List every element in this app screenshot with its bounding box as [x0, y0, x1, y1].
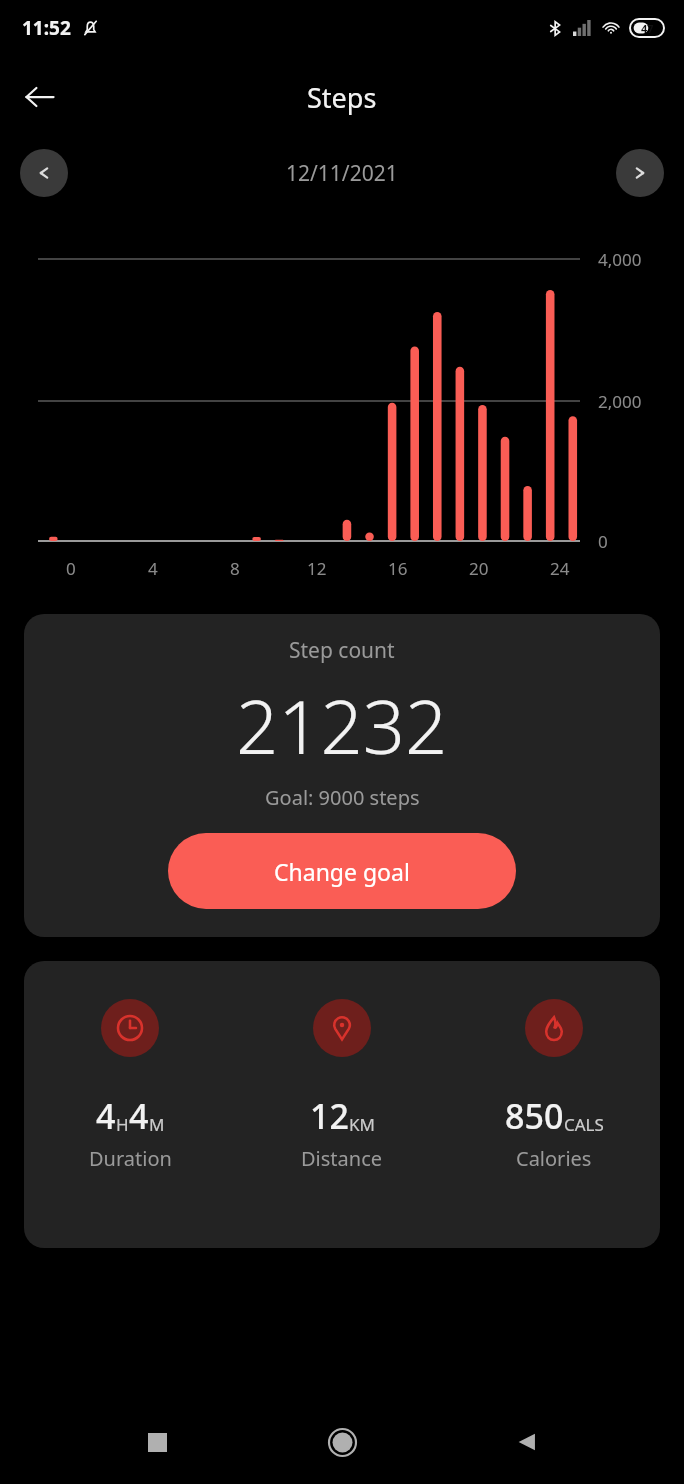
staticText: 12	[307, 557, 327, 580]
staticText: 20	[469, 557, 489, 580]
staticText: 4,000	[598, 248, 642, 271]
staticText: Change goal	[274, 856, 410, 887]
staticText: 12/11/2021	[286, 159, 398, 188]
button[interactable]: 4	[24, 999, 236, 1172]
button[interactable]: Home	[314, 1414, 370, 1470]
staticText: 16	[388, 557, 408, 580]
staticText: 11:52	[22, 15, 71, 41]
staticText: Distance	[301, 1145, 383, 1172]
staticText: 850	[505, 1093, 564, 1139]
staticText: CALS	[564, 1113, 604, 1136]
staticText: 8	[230, 557, 240, 580]
button[interactable]: 850	[448, 999, 660, 1172]
button[interactable]: Recents	[129, 1414, 185, 1470]
staticText: 24	[550, 557, 570, 580]
staticText: KM	[349, 1113, 375, 1136]
button[interactable]: Back	[499, 1414, 555, 1470]
button[interactable]: Change goal	[168, 833, 516, 909]
staticText: 4	[96, 1093, 116, 1139]
button[interactable]: Previous day	[20, 149, 68, 197]
staticText: 0	[598, 530, 608, 553]
staticText: M	[149, 1113, 165, 1136]
staticText: 0	[66, 557, 76, 580]
staticText: Goal: 9000 steps	[265, 784, 420, 811]
staticText: Steps	[307, 79, 377, 116]
button[interactable]: Back	[12, 69, 68, 125]
staticText: 4	[148, 557, 158, 580]
staticText: H	[116, 1113, 129, 1136]
button[interactable]: Step count	[24, 614, 660, 937]
staticText: 21232	[236, 675, 448, 776]
staticText: 12	[310, 1093, 349, 1139]
staticText: Duration	[89, 1145, 172, 1172]
staticText: 47	[641, 21, 654, 36]
staticText: 2,000	[598, 390, 642, 413]
button[interactable]: 12	[236, 999, 448, 1172]
button[interactable]: Next day	[616, 149, 664, 197]
staticText: Step count	[289, 636, 395, 665]
staticText: Calories	[516, 1145, 592, 1172]
staticText: 4	[129, 1093, 149, 1139]
